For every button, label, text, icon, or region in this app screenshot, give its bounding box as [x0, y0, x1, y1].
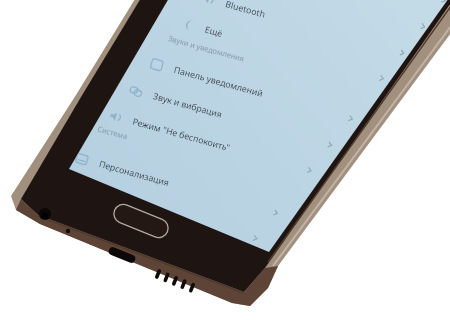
staticText: Система: [96, 123, 129, 141]
button[interactable]: Аккаунты: [30, 163, 269, 255]
button[interactable]: Bluetooth: [177, 0, 416, 70]
button[interactable]: Wi-Fi: [219, 0, 450, 17]
staticText: Дата и время: [57, 209, 117, 236]
staticText: Панель уведомлений: [173, 64, 264, 100]
button[interactable]: Дата и время: [11, 188, 249, 281]
staticText: Персонализация: [98, 158, 171, 189]
staticText: Режим "Не беспокоить": [131, 116, 232, 154]
button[interactable]: Режим "Не беспокоить": [84, 95, 323, 187]
staticText: Звук и вибрация: [152, 90, 223, 121]
staticText: Звуки и уведомления: [167, 33, 246, 64]
button[interactable]: Персонализация: [51, 137, 289, 230]
staticText: Ещё: [203, 24, 224, 40]
button[interactable]: Панель уведомлений: [126, 43, 364, 136]
button[interactable]: Звук и вибрация: [105, 69, 343, 162]
button[interactable]: SIM-карты: [198, 0, 436, 43]
staticText: Bluetooth: [224, 0, 267, 21]
staticText: Аккаунты: [77, 184, 120, 206]
button[interactable]: Ещё: [157, 3, 395, 95]
